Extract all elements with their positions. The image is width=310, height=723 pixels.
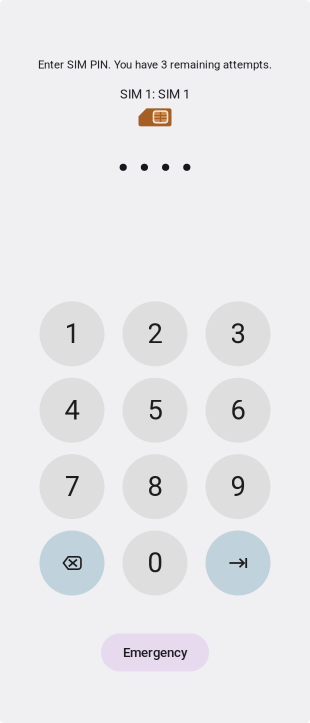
staticText: 8 [147,471,162,503]
staticText: 5 [147,394,162,426]
button[interactable]: Emergency [101,633,209,671]
staticText: SIM 1: SIM 1 [120,87,190,102]
staticText: 7 [64,471,79,503]
staticText: 9 [230,471,245,503]
button[interactable]: 3 [205,301,270,366]
staticText: 1 [64,318,79,350]
staticText: Emergency [123,645,187,660]
button[interactable]: 0 [122,530,187,595]
button[interactable]: Delete [39,530,104,595]
staticText: 3 [230,318,245,350]
button[interactable]: 4 [39,378,104,443]
button[interactable]: 7 [39,454,104,519]
button[interactable]: 8 [122,454,187,519]
button[interactable]: 5 [122,378,187,443]
button[interactable]: Enter [205,530,270,595]
staticText: 0 [147,547,162,579]
staticText: 4 [64,394,79,426]
staticText: 2 [147,318,162,350]
button[interactable]: 2 [122,301,187,366]
button[interactable]: 6 [205,378,270,443]
button[interactable]: 1 [39,301,104,366]
staticText: Enter SIM PIN. You have 3 remaining atte… [38,58,272,71]
button[interactable]: 9 [205,454,270,519]
staticText: 6 [230,394,245,426]
